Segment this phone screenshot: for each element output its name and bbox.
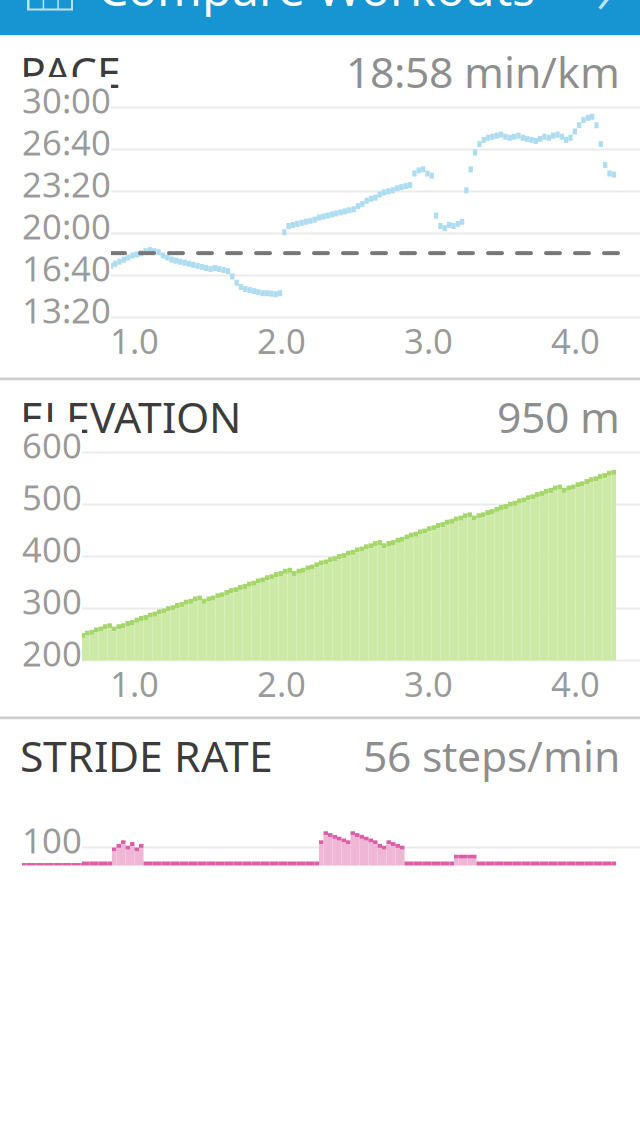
staticText: 30:00 [22,77,111,123]
staticText: 2.0 [257,660,306,706]
staticText: PACE [20,43,121,100]
staticText: 20:00 [22,203,111,249]
staticText: 16:40 [22,245,111,291]
staticText: 56 steps/min [363,727,620,784]
staticText: 600 [22,422,82,468]
staticText: 400 [22,526,82,572]
staticText: 26:40 [22,119,111,165]
staticText: 200 [22,630,82,676]
staticText: ELEVATION [20,388,241,445]
staticText: 2.0 [257,317,306,363]
staticText: 100 [22,817,82,863]
staticText: 500 [22,474,82,520]
staticText: 23:20 [22,161,111,207]
staticText: 18:58 min/km [346,43,620,100]
staticText: 13:20 [22,287,111,333]
staticText: 1.0 [110,317,159,363]
button[interactable]: Compare Workouts [0,0,640,35]
staticText: 4.0 [551,660,600,706]
staticText: 950 m [497,388,620,445]
staticText: STRIDE RATE [20,727,273,784]
staticText: Compare Workouts [98,0,535,19]
staticText: 1.0 [110,660,159,706]
staticText: › [596,0,614,34]
staticText: 3.0 [404,660,453,706]
staticText: 300 [22,578,82,624]
staticText: 4.0 [551,317,600,363]
staticText: 3.0 [404,317,453,363]
